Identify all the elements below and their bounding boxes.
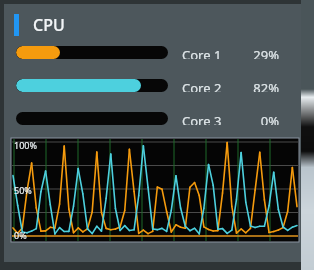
button[interactable]: CPU usage history graph bbox=[11, 138, 299, 242]
staticText: 82% bbox=[239, 79, 279, 92]
button[interactable]: Core 2 bbox=[4, 79, 301, 92]
staticText: Core 2 bbox=[182, 79, 222, 92]
staticText: CPU bbox=[33, 14, 65, 36]
staticText: 100% bbox=[14, 139, 37, 151]
button[interactable]: CPU bbox=[4, 4, 301, 46]
staticText: Core 1 bbox=[182, 46, 222, 59]
button[interactable]: Core 1 bbox=[4, 46, 301, 59]
staticText: 50% bbox=[14, 184, 32, 196]
staticText: 0% bbox=[14, 229, 27, 241]
staticText: 29% bbox=[239, 46, 279, 59]
button[interactable]: Core 3 bbox=[4, 112, 301, 125]
staticText: Core 3 bbox=[182, 112, 222, 125]
staticText: 0% bbox=[239, 112, 279, 125]
